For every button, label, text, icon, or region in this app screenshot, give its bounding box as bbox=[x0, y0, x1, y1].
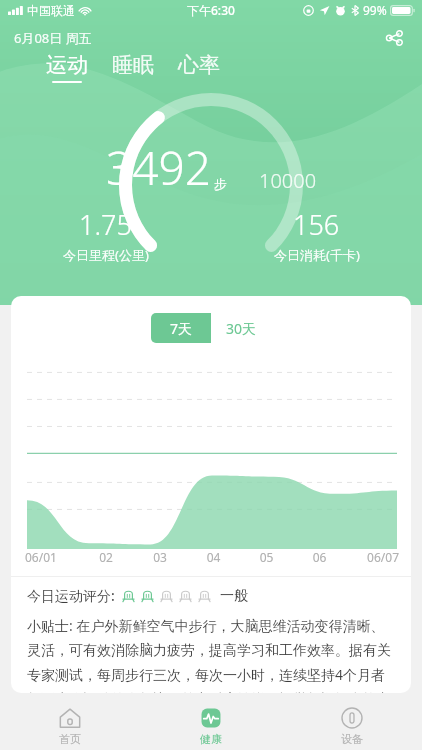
staticText: 今日消耗(千卡) bbox=[274, 246, 360, 264]
staticText: 04 bbox=[187, 549, 240, 565]
staticText: 设备 bbox=[341, 732, 363, 746]
button[interactable]: 健康 bbox=[140, 702, 281, 750]
staticText: 7天 bbox=[170, 319, 193, 338]
staticText: 步 bbox=[214, 176, 227, 192]
staticText: 健康 bbox=[200, 732, 222, 746]
staticText: 睡眠 bbox=[112, 52, 154, 78]
staticText: 99% bbox=[363, 2, 387, 18]
staticText: 下午6:30 bbox=[187, 2, 235, 18]
button[interactable]: 睡眠 bbox=[110, 52, 156, 83]
staticText: 一般 bbox=[220, 587, 248, 605]
button[interactable]: 30天 bbox=[211, 313, 271, 343]
staticText: 小贴士: 在户外新鲜空气中步行，大脑思维活动变得清晰、灵活，可有效消除脑力疲劳，… bbox=[27, 616, 395, 693]
button[interactable]: 运动 bbox=[44, 52, 90, 83]
staticText: 首页 bbox=[59, 732, 81, 746]
button[interactable]: 设备 bbox=[281, 702, 422, 750]
staticText: 06 bbox=[293, 549, 346, 565]
staticText: 3492 bbox=[106, 136, 212, 199]
staticText: 30天 bbox=[226, 319, 257, 338]
staticText: 06/07 bbox=[346, 549, 399, 565]
staticText: 03 bbox=[133, 549, 187, 565]
button[interactable]: Share bbox=[377, 25, 411, 51]
staticText: 156 bbox=[293, 206, 340, 243]
staticText: 运动 bbox=[46, 52, 88, 78]
staticText: 02 bbox=[79, 549, 133, 565]
button[interactable]: 心率 bbox=[176, 52, 222, 83]
staticText: 05 bbox=[240, 549, 293, 565]
button[interactable]: 首页 bbox=[0, 702, 140, 750]
staticText: 06/01 bbox=[25, 549, 79, 565]
staticText: 今日里程(公里) bbox=[63, 246, 149, 264]
staticText: 中国联通 bbox=[27, 3, 75, 18]
staticText: 1.75 bbox=[79, 206, 132, 243]
button[interactable]: 7天 bbox=[151, 313, 211, 343]
staticText: 6月08日 周五 bbox=[14, 29, 92, 47]
staticText: 今日运动评分: bbox=[27, 586, 115, 605]
staticText: 10000 bbox=[259, 167, 317, 194]
staticText: 心率 bbox=[178, 52, 220, 78]
